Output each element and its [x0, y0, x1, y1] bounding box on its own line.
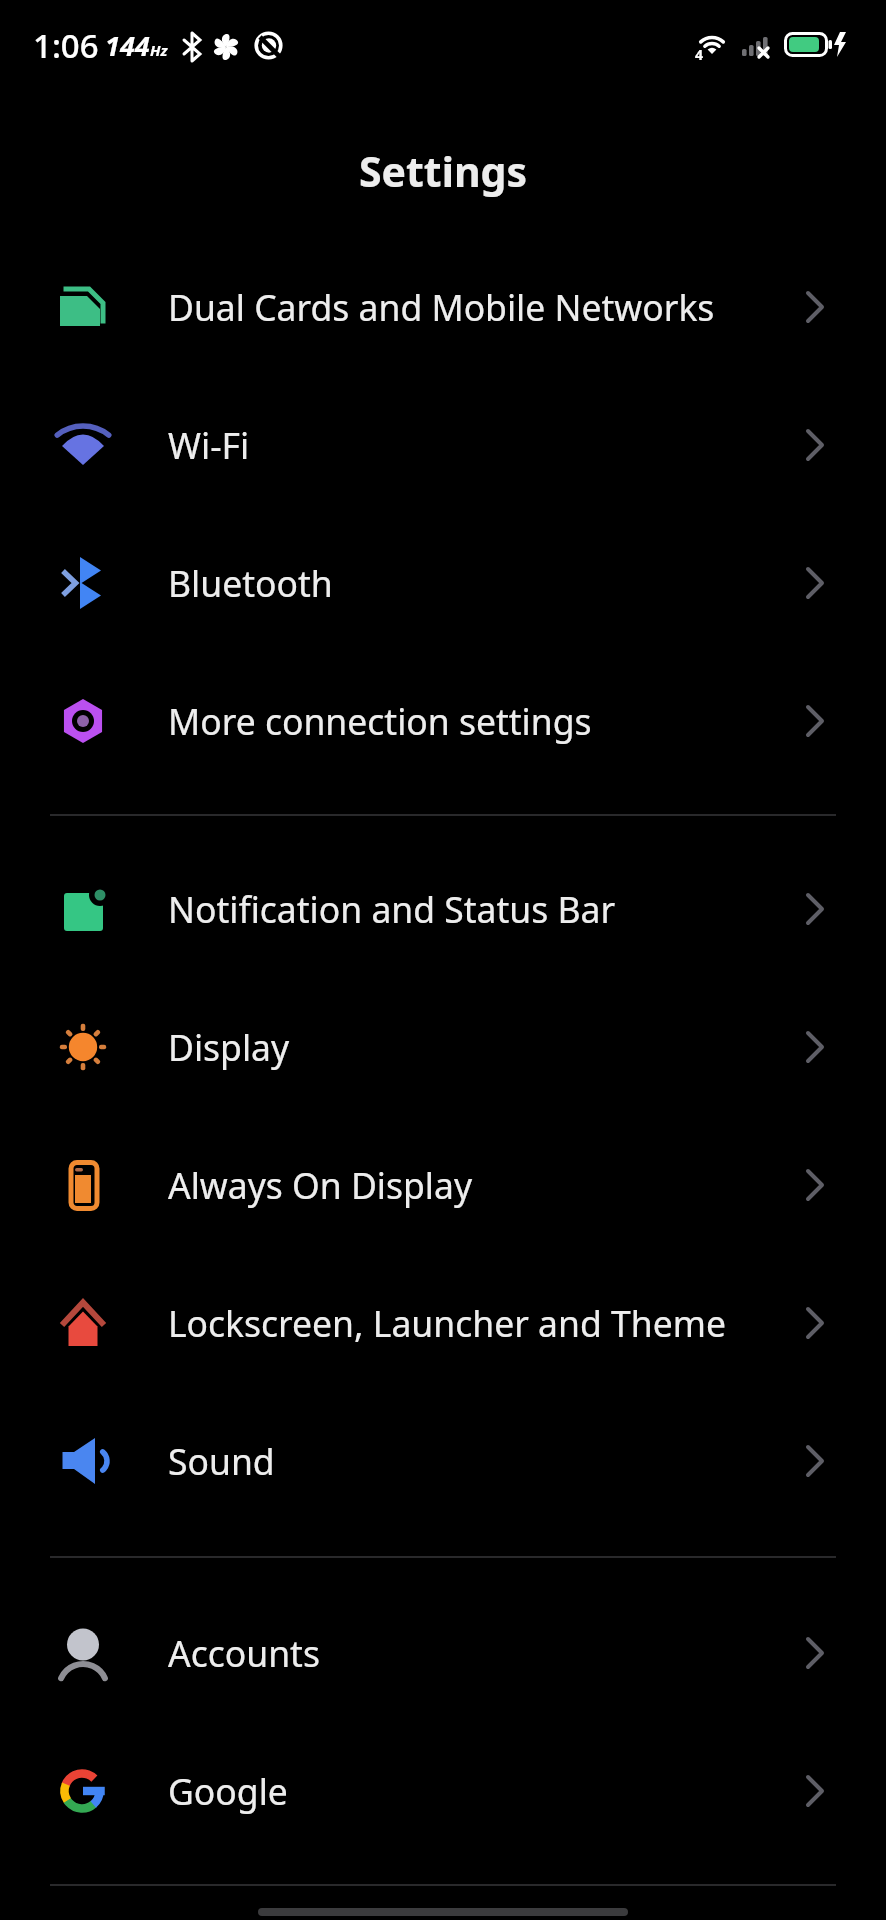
button[interactable]: Lockscreen, Launcher and Theme	[0, 1254, 886, 1392]
staticText: Accounts	[168, 1629, 320, 1677]
staticText: 144	[105, 27, 150, 64]
staticText: Dual Cards and Mobile Networks	[168, 283, 715, 331]
staticText: Wi-Fi	[168, 421, 250, 469]
staticText: Hz	[150, 40, 168, 60]
staticText: Display	[168, 1023, 290, 1071]
staticText: Google	[168, 1767, 288, 1815]
button[interactable]: Sound	[0, 1392, 886, 1530]
button[interactable]: Notification and Status Bar	[0, 840, 886, 978]
staticText: Notification and Status Bar	[168, 885, 616, 933]
staticText: Sound	[168, 1437, 275, 1485]
button[interactable]: Wi-Fi	[0, 376, 886, 514]
button[interactable]: Bluetooth	[0, 514, 886, 652]
staticText: Always On Display	[168, 1161, 472, 1209]
staticText: Bluetooth	[168, 559, 333, 607]
button[interactable]: More connection settings	[0, 652, 886, 790]
button[interactable]: Accounts	[0, 1584, 886, 1722]
staticText: 4	[695, 45, 704, 64]
button[interactable]: Display	[0, 978, 886, 1116]
staticText: More connection settings	[168, 697, 592, 745]
staticText: Settings	[359, 143, 528, 199]
button[interactable]: Google	[0, 1722, 886, 1860]
button[interactable]: Dual Cards and Mobile Networks	[0, 238, 886, 376]
staticText: 1:06	[33, 23, 99, 68]
staticText: Lockscreen, Launcher and Theme	[168, 1299, 726, 1347]
button[interactable]: Always On Display	[0, 1116, 886, 1254]
